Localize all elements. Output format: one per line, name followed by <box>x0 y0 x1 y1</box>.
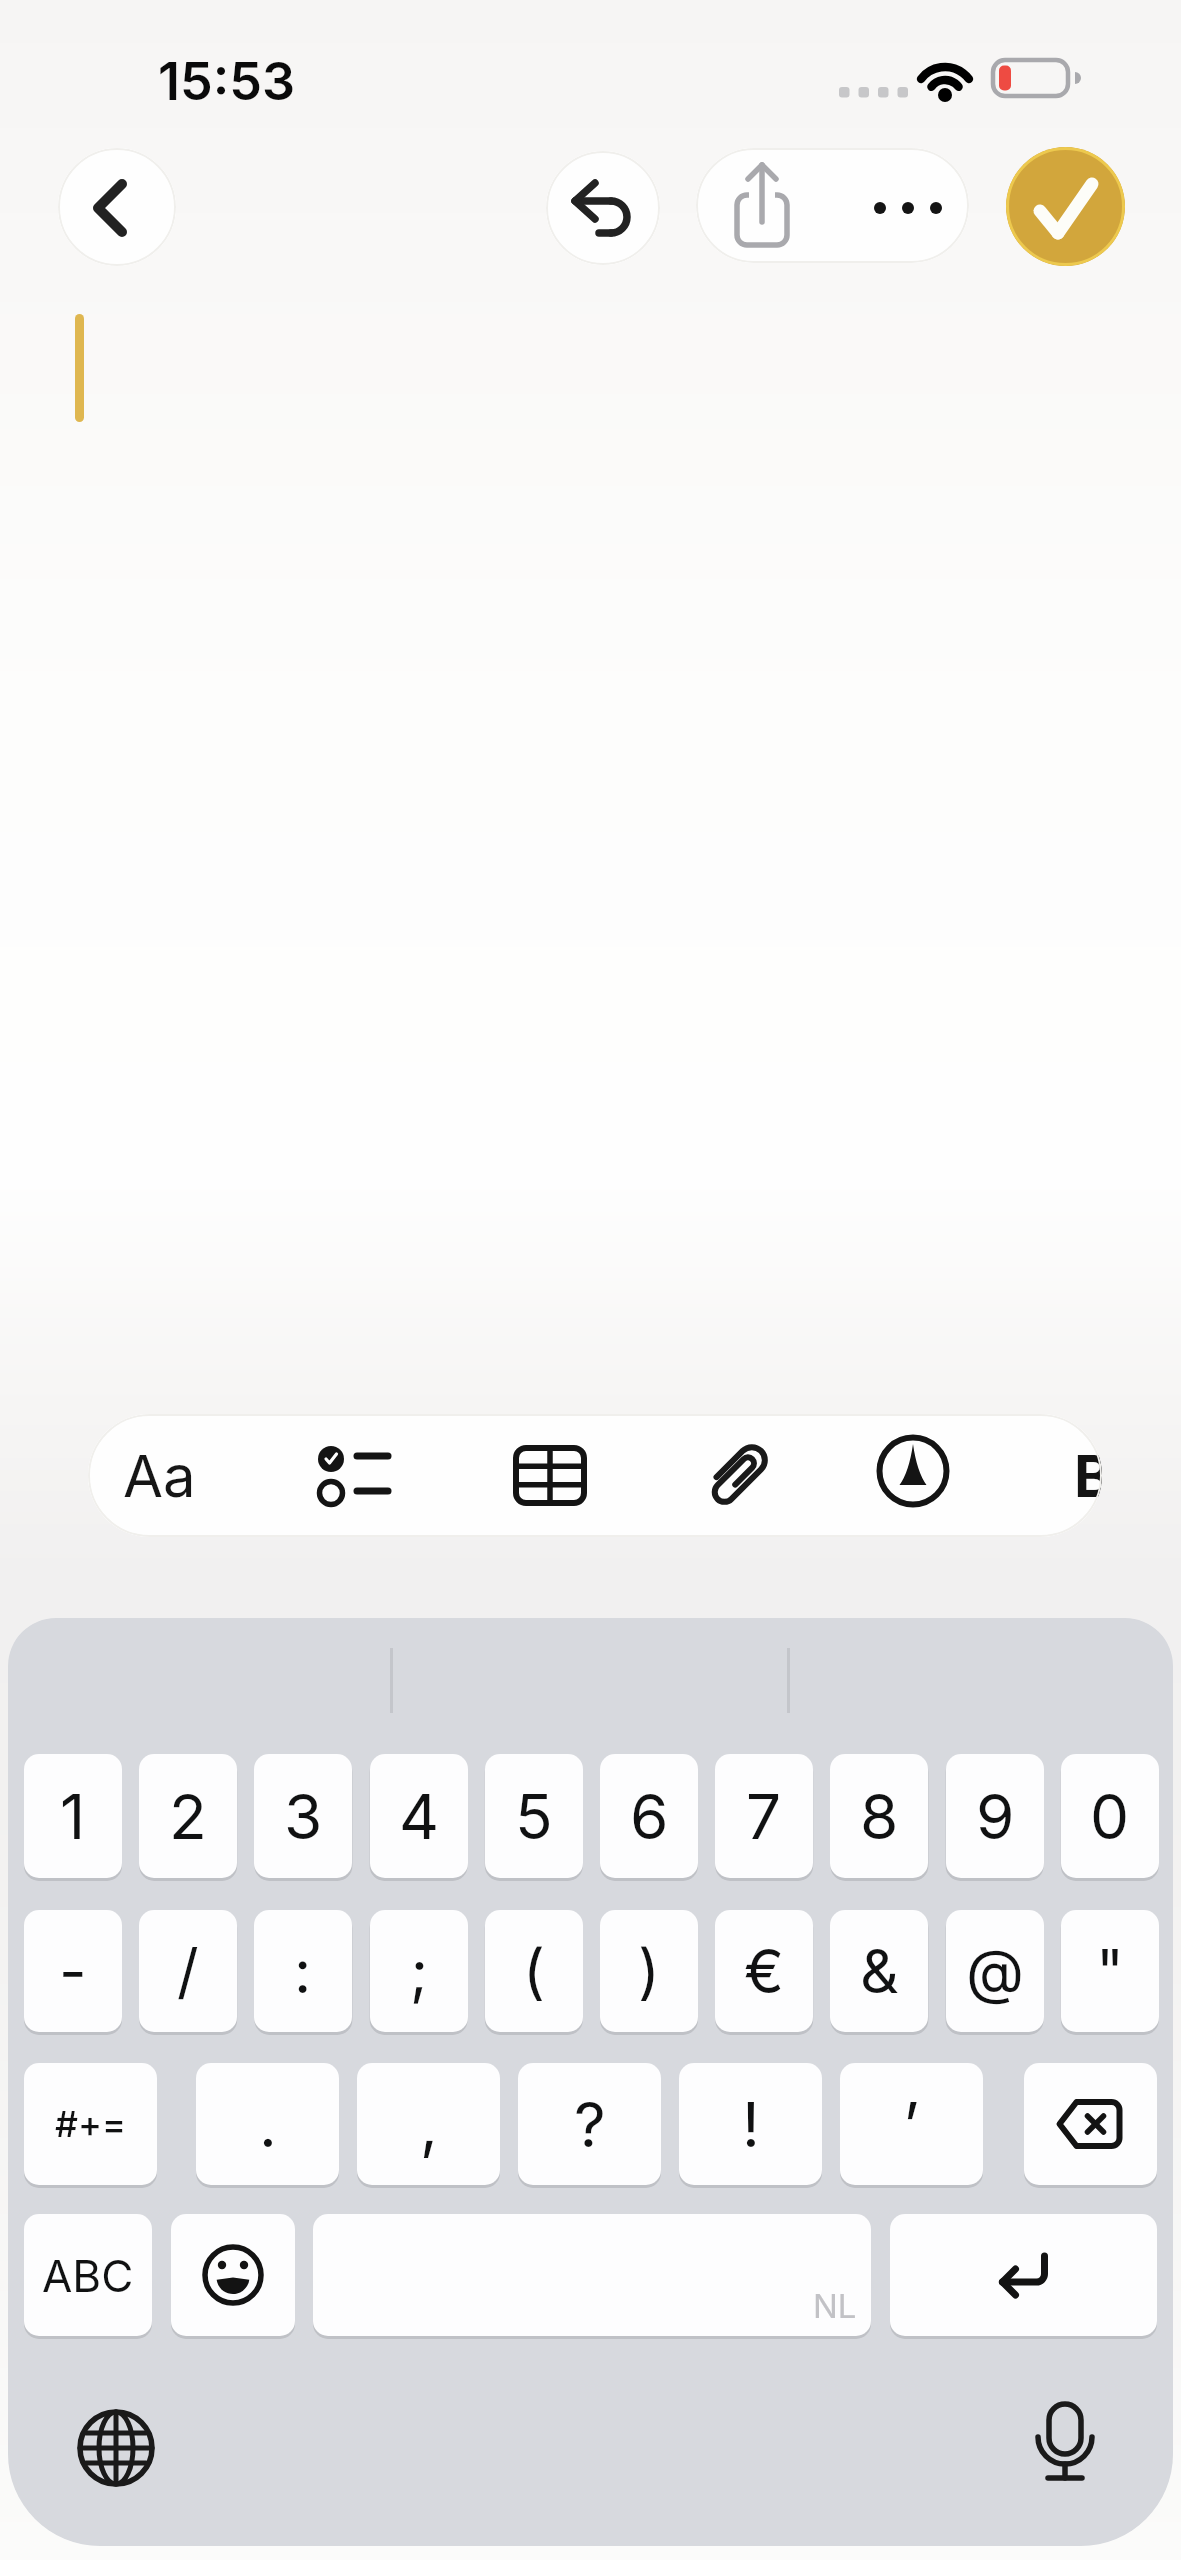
button[interactable] <box>677 1414 797 1537</box>
staticText: 9 <box>976 1779 1015 1854</box>
button[interactable]: 2 <box>139 1754 237 1878</box>
button[interactable]: / <box>139 1910 237 2032</box>
button[interactable]: . <box>196 2063 339 2185</box>
button[interactable]: € <box>715 1910 813 2032</box>
button[interactable]: B <box>1074 1414 1102 1537</box>
button[interactable] <box>546 151 660 265</box>
staticText: B <box>1074 1441 1102 1511</box>
button[interactable]: ? <box>518 2063 661 2185</box>
button[interactable]: ( <box>485 1910 583 2032</box>
staticText: ’ <box>903 2087 920 2162</box>
staticText: ? <box>574 2087 606 2162</box>
staticText: ( <box>523 1935 545 2008</box>
button[interactable]: 1 <box>24 1754 122 1878</box>
button[interactable]: 6 <box>600 1754 698 1878</box>
staticText: " <box>1096 1935 1124 2008</box>
staticText: 0 <box>1090 1779 1130 1854</box>
staticText: 1 <box>60 1779 86 1854</box>
staticText: 3 <box>284 1779 323 1854</box>
button[interactable]: Aa <box>99 1414 219 1537</box>
staticText: , <box>420 2087 438 2162</box>
button[interactable] <box>171 2214 295 2336</box>
button[interactable]: 0 <box>1061 1754 1159 1878</box>
button[interactable] <box>853 1414 973 1537</box>
staticText: . <box>259 2087 277 2162</box>
button[interactable]: 9 <box>946 1754 1044 1878</box>
button[interactable]: 5 <box>485 1754 583 1878</box>
button[interactable]: & <box>830 1910 928 2032</box>
button[interactable]: , <box>357 2063 500 2185</box>
staticText: ; <box>410 1935 429 2008</box>
button[interactable]: ’ <box>840 2063 983 2185</box>
staticText: ABC <box>42 2249 134 2302</box>
staticText: ) <box>638 1935 660 2008</box>
staticText: 15:53 <box>158 50 296 113</box>
staticText: : <box>294 1935 312 2008</box>
staticText: ! <box>742 2087 760 2162</box>
button[interactable] <box>490 1414 610 1537</box>
button[interactable]: NL <box>313 2214 871 2336</box>
staticText: 2 <box>169 1779 207 1854</box>
button[interactable]: 8 <box>830 1754 928 1878</box>
button[interactable] <box>58 148 176 266</box>
staticText: NL <box>813 2286 857 2326</box>
button[interactable]: ABC <box>24 2214 152 2336</box>
button[interactable]: 4 <box>370 1754 468 1878</box>
staticText: #+= <box>55 2102 127 2146</box>
staticText: - <box>59 1935 87 2008</box>
button[interactable]: ; <box>370 1910 468 2032</box>
button[interactable] <box>1019 2398 1111 2490</box>
button[interactable] <box>1006 147 1125 266</box>
button[interactable] <box>70 2402 162 2494</box>
staticText: € <box>744 1935 784 2008</box>
button[interactable]: ! <box>679 2063 822 2185</box>
button[interactable] <box>696 148 832 263</box>
button[interactable]: @ <box>946 1910 1044 2032</box>
staticText: 7 <box>746 1779 782 1854</box>
button[interactable]: 3 <box>254 1754 352 1878</box>
button[interactable] <box>1024 2063 1157 2185</box>
button[interactable]: - <box>24 1910 122 2032</box>
staticText: Aa <box>123 1441 196 1511</box>
staticText: 4 <box>399 1779 440 1854</box>
button[interactable] <box>291 1414 411 1537</box>
staticText: 5 <box>515 1779 553 1854</box>
staticText: & <box>860 1935 899 2008</box>
button[interactable]: #+= <box>24 2063 157 2185</box>
staticText: @ <box>966 1935 1024 2008</box>
staticText: / <box>177 1935 199 2008</box>
button[interactable] <box>832 148 969 263</box>
button[interactable]: 7 <box>715 1754 813 1878</box>
staticText: 6 <box>630 1779 669 1854</box>
button[interactable]: ) <box>600 1910 698 2032</box>
button[interactable]: : <box>254 1910 352 2032</box>
button[interactable] <box>890 2214 1157 2336</box>
staticText: 8 <box>860 1779 899 1854</box>
button[interactable]: " <box>1061 1910 1159 2032</box>
